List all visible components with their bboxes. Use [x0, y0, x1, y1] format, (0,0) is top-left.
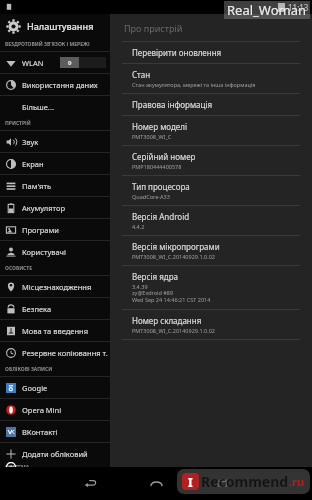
staticText: Безпека [22, 304, 52, 314]
button[interactable]: Використання даних [0, 74, 110, 95]
staticText: Більше... [22, 102, 54, 112]
staticText: ОБЛІКОВІ ЗАПИСИ [5, 366, 53, 373]
staticText: БЕЗДРОТОВИЙ ЗВ'ЯЗОК І МЕРЕЖІ [5, 41, 90, 48]
button[interactable]: Recents [200, 467, 244, 500]
button[interactable]: Версія Android [110, 206, 312, 235]
staticText: Програми [22, 225, 59, 235]
button[interactable]: Екран [0, 153, 110, 174]
staticText: Google [22, 383, 48, 393]
staticText: 0 [68, 59, 72, 67]
staticText: Стан [132, 69, 151, 80]
staticText: QuadCore-A33 [132, 193, 170, 200]
staticText: Номер складання [132, 315, 202, 326]
staticText: ОСОБИСТЕ [5, 265, 33, 272]
staticText: 3.4.39 zy@Exdroid #89 Wed Sep 24 14:46:2… [132, 283, 211, 304]
staticText: Версія ядра [132, 271, 178, 282]
staticText: Пам'ять [22, 181, 52, 191]
button[interactable]: Тип процесора [110, 176, 312, 205]
button[interactable]: Стан [110, 64, 312, 93]
button[interactable]: Версія мікропрограми [110, 236, 312, 265]
button[interactable]: Безпека [0, 298, 110, 319]
staticText: Використання даних [22, 80, 98, 90]
staticText: Місцезнаходження [22, 282, 92, 292]
button[interactable]: Налаштування [0, 14, 110, 38]
staticText: PMT3008_WI_C.20140929.1.0.02 [132, 253, 215, 260]
staticText: ПРИСТРІЙ [5, 120, 31, 127]
staticText: PMT3008_WI_C [132, 133, 172, 140]
staticText: Правова інформація [132, 99, 213, 110]
button[interactable]: Акумулятор [0, 197, 110, 218]
staticText: I [188, 474, 193, 490]
staticText: Про пристрій [124, 22, 183, 34]
button[interactable]: Home [134, 467, 178, 500]
button[interactable]: ВКонтакті [0, 421, 110, 442]
button[interactable]: Звук [0, 131, 110, 152]
button[interactable]: Місцезнаходження [0, 276, 110, 297]
staticText: WLAN [22, 58, 44, 68]
button[interactable]: Пам'ять [0, 175, 110, 196]
staticText: PMP180444400578 [132, 163, 182, 170]
staticText: Мова та введення [22, 326, 88, 336]
button[interactable]: Back [68, 467, 112, 500]
button[interactable]: Програми [0, 219, 110, 240]
staticText: ВКонтакті [22, 427, 58, 437]
staticText: Перевірити оновлення [132, 47, 222, 58]
staticText: 11:13 [288, 2, 309, 13]
staticText: СИСТЕМА [5, 464, 30, 467]
button[interactable]: Серійний номер [110, 146, 312, 175]
staticText: Резервне копіювання т. [22, 348, 108, 358]
staticText: Серійний номер [132, 151, 196, 162]
staticText: Акумулятор [22, 203, 65, 213]
button[interactable]: Правова інформація [110, 94, 312, 115]
button[interactable]: Користувачі [0, 241, 110, 262]
staticText: Real_Woman [227, 1, 307, 19]
staticText: Налаштування [27, 20, 94, 32]
staticText: Opera Mini [22, 405, 62, 415]
button[interactable]: Версія ядра [110, 266, 312, 309]
button[interactable]: Google [0, 377, 110, 398]
staticText: PMT3008_WI_C.20140929.1.0.02 [132, 327, 215, 334]
button[interactable]: WLAN [0, 52, 110, 73]
staticText: Екран [22, 159, 44, 169]
staticText: Номер моделі [132, 121, 188, 132]
button[interactable]: Номер складання [110, 310, 312, 339]
button[interactable]: Opera Mini [0, 399, 110, 420]
staticText: Звук [22, 137, 39, 147]
button[interactable]: Більше... [0, 96, 110, 117]
staticText: .ru [289, 474, 305, 489]
button[interactable]: Додати обліковий запис [0, 443, 110, 464]
staticText: Recommend [201, 472, 289, 491]
button[interactable]: Номер моделі [110, 116, 312, 145]
staticText: Користувачі [22, 247, 66, 257]
staticText: Стан акумулятора, мережі та інша інформа… [132, 81, 256, 88]
staticText: Версія мікропрограми [132, 241, 220, 252]
staticText: Тип процесора [132, 181, 190, 192]
staticText: Додати обліковий запис [22, 449, 110, 459]
button[interactable]: Резервне копіювання т. [0, 342, 110, 363]
staticText: Версія Android [132, 211, 190, 222]
button[interactable]: Мова та введення [0, 320, 110, 341]
staticText: 4.4.2 [132, 223, 145, 230]
button[interactable]: Перевірити оновлення [110, 42, 312, 63]
